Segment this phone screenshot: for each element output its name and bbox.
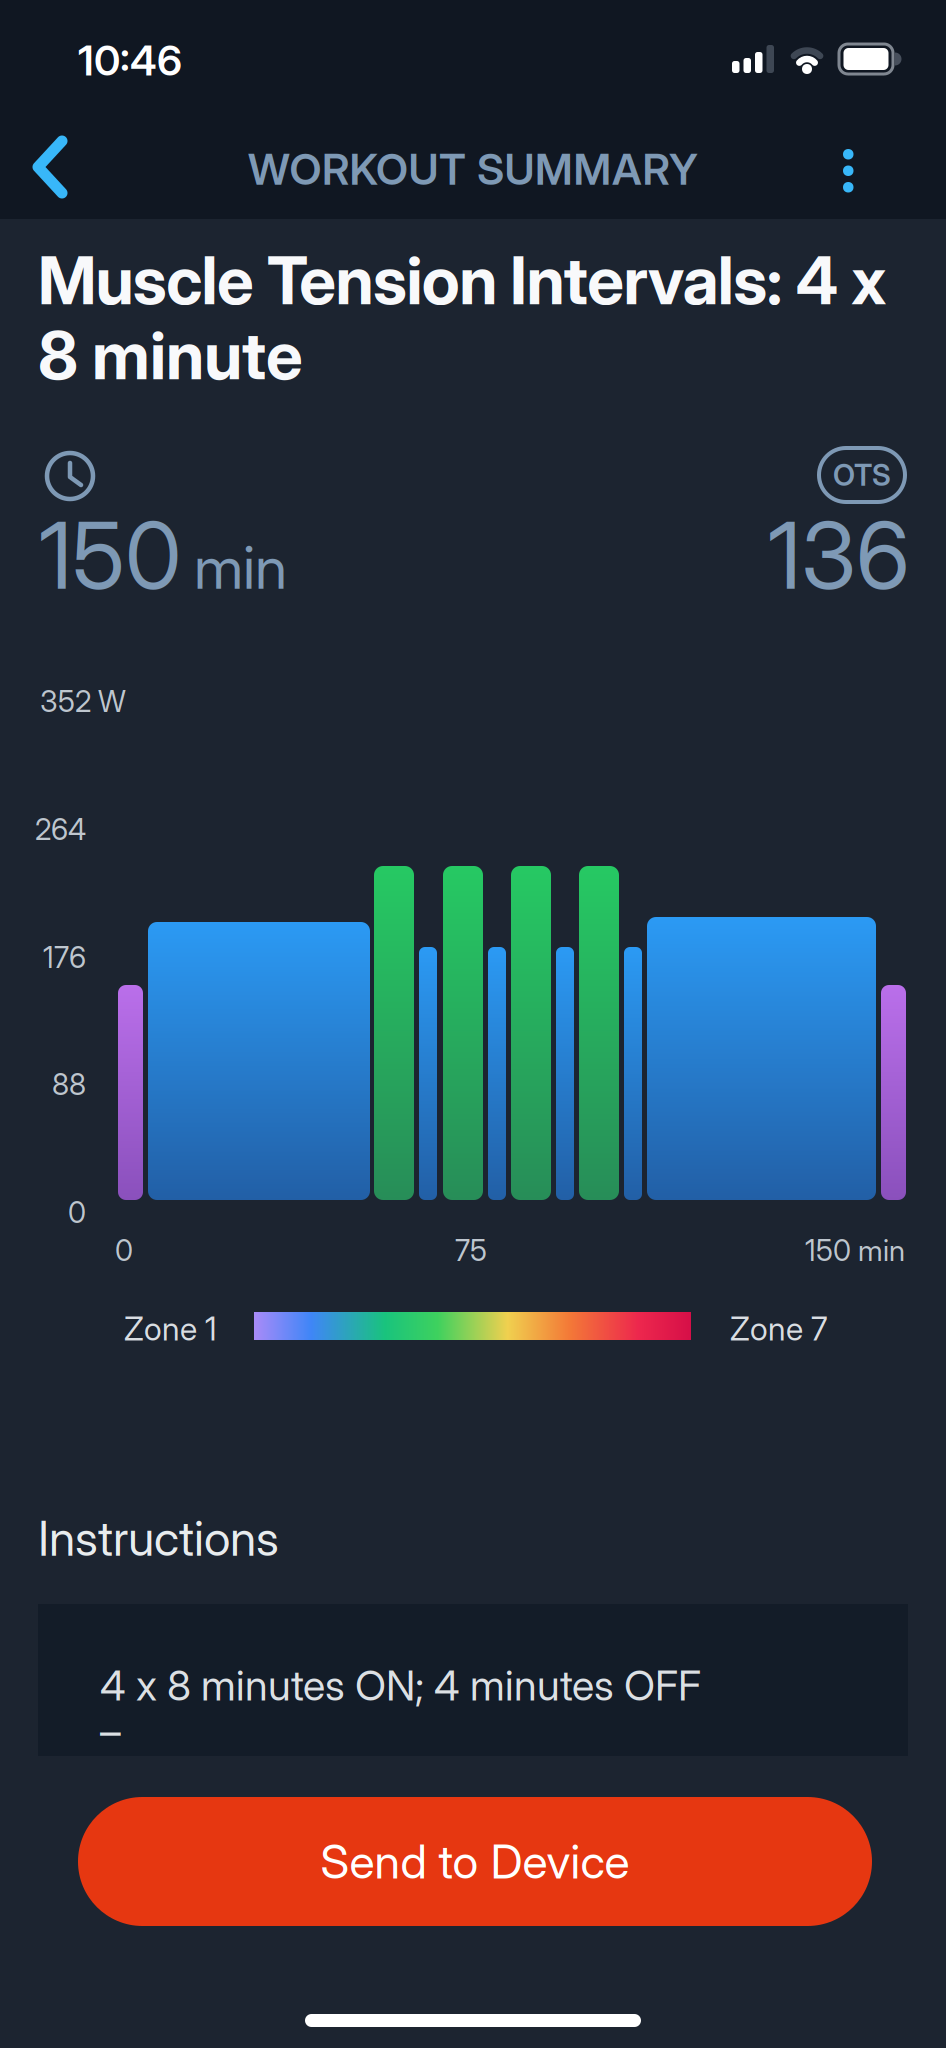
- staticText: OTS: [833, 458, 891, 492]
- staticText: Instructions: [38, 1510, 279, 1567]
- staticText: 176: [43, 940, 86, 975]
- staticText: 0: [115, 1233, 133, 1268]
- staticText: 8 minute: [38, 317, 303, 394]
- staticText: WORKOUT SUMMARY: [248, 144, 698, 194]
- staticText: min: [194, 533, 287, 602]
- staticText: 0: [68, 1195, 86, 1230]
- staticText: 150 min: [805, 1233, 905, 1268]
- staticText: Zone 7: [730, 1310, 828, 1348]
- staticText: 150: [39, 501, 181, 609]
- staticText: 352 W: [40, 684, 126, 719]
- staticText: 264: [35, 812, 86, 847]
- staticText: 10:46: [78, 36, 182, 85]
- staticText: –: [100, 1707, 121, 1756]
- staticText: Muscle Tension Intervals: 4 x: [38, 242, 886, 319]
- staticText: 88: [52, 1067, 86, 1102]
- staticText: Zone 1: [124, 1310, 217, 1348]
- staticText: 136: [768, 501, 910, 609]
- staticText: 75: [455, 1233, 487, 1268]
- staticText: 4 х 8 minutes ON; 4 minutes OFF: [100, 1661, 701, 1710]
- staticText: Send to Device: [320, 1834, 629, 1889]
